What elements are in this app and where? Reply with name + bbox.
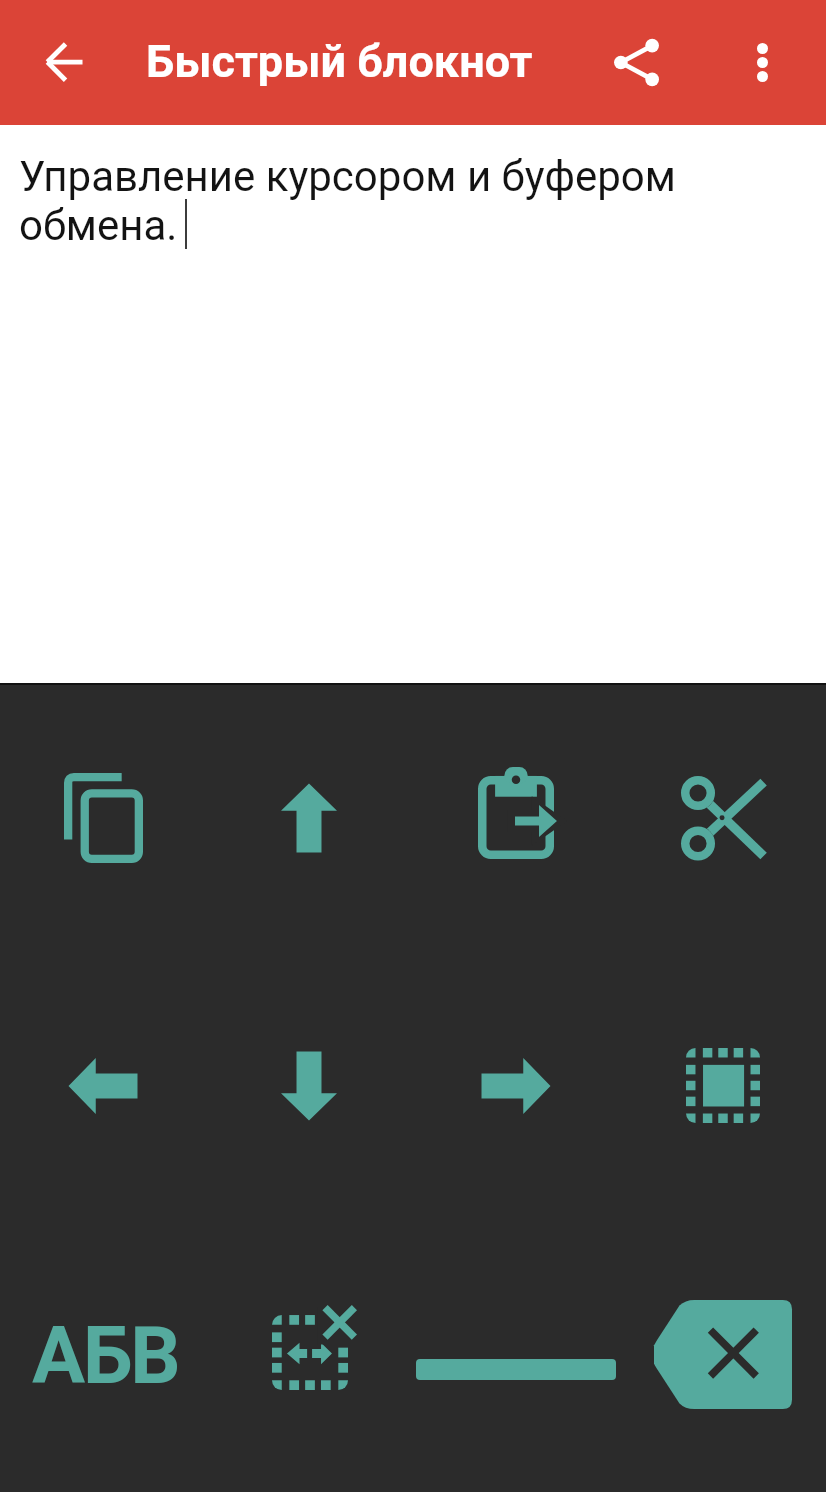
button[interactable]: Cut <box>619 685 826 951</box>
staticText: Быстрый блокнот <box>146 35 533 88</box>
button[interactable]: Move up <box>206 685 412 951</box>
button[interactable]: Select all <box>619 951 826 1220</box>
button[interactable]: Copy <box>0 685 206 951</box>
button[interactable]: Space <box>412 1220 619 1488</box>
button[interactable]: Move left <box>0 951 206 1220</box>
button[interactable]: More options <box>716 0 826 125</box>
button[interactable]: Switch to letters <box>0 1220 206 1488</box>
staticText: Управление курсором и буфером обмена. <box>19 152 706 250</box>
button[interactable]: Move right <box>412 951 619 1220</box>
button[interactable]: Move down <box>206 951 412 1220</box>
button[interactable]: Paste <box>412 685 619 951</box>
staticText: АБВ <box>32 1310 179 1403</box>
button[interactable]: Back <box>0 0 110 125</box>
button[interactable]: Deselect <box>206 1220 412 1488</box>
button[interactable]: Backspace <box>619 1220 826 1488</box>
button[interactable]: Share <box>606 0 716 125</box>
